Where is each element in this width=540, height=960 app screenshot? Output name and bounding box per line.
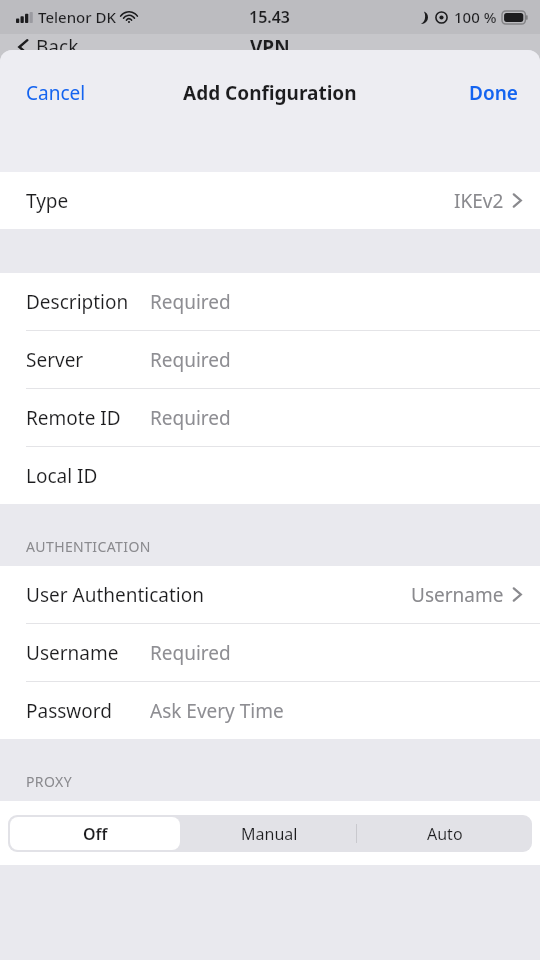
button[interactable]: Username	[0, 624, 540, 682]
button[interactable]: Remote ID	[0, 389, 540, 447]
button[interactable]: Local ID	[0, 447, 540, 504]
staticText: Cancel	[26, 80, 86, 106]
staticText: 15.43	[249, 6, 291, 28]
button[interactable]: Type	[0, 172, 540, 229]
button[interactable]: Auto	[357, 815, 532, 852]
staticText: Off	[83, 823, 108, 845]
staticText: Local ID	[26, 463, 98, 489]
staticText: Username	[411, 582, 504, 608]
staticText: Back	[36, 34, 79, 60]
button[interactable]: Password	[0, 682, 540, 739]
button[interactable]: Server	[0, 331, 540, 389]
staticText: Add Configuration	[183, 80, 357, 106]
staticText: Password	[26, 698, 112, 724]
staticText: Done	[469, 80, 518, 106]
staticText: 100 %	[454, 7, 497, 27]
staticText: Remote ID	[26, 405, 121, 431]
button[interactable]: User Authentication	[0, 566, 540, 624]
staticText: Server	[26, 347, 84, 373]
button[interactable]: Description	[0, 273, 540, 331]
button[interactable]: Cancel	[0, 70, 112, 116]
staticText: User Authentication	[26, 582, 204, 608]
staticText: Required	[150, 405, 231, 431]
staticText: AUTHENTICATION	[26, 537, 151, 556]
staticText: Type	[26, 188, 69, 214]
staticText: PROXY	[26, 772, 72, 791]
staticText: VPN	[250, 34, 290, 60]
staticText: Required	[150, 640, 231, 666]
button[interactable]: Off	[8, 815, 182, 852]
staticText: Description	[26, 289, 129, 315]
staticText: Auto	[427, 823, 463, 845]
staticText: Username	[26, 640, 119, 666]
staticText: IKEv2	[454, 188, 504, 214]
staticText: Manual	[241, 823, 298, 845]
staticText: Ask Every Time	[150, 698, 284, 724]
button[interactable]: Done	[447, 70, 540, 116]
staticText: Telenor DK	[38, 7, 116, 27]
button[interactable]: Manual	[182, 815, 357, 852]
staticText: Required	[150, 347, 231, 373]
staticText: Required	[150, 289, 231, 315]
